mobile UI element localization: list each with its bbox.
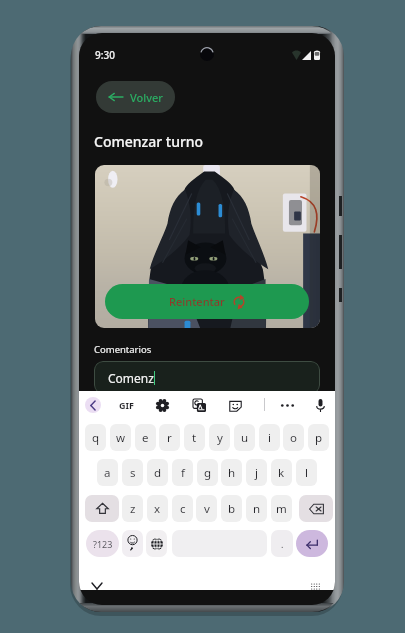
button[interactable]: p xyxy=(308,424,329,451)
staticText: Volver xyxy=(130,90,163,105)
button[interactable]: n xyxy=(246,495,267,522)
button[interactable]: q xyxy=(85,424,106,451)
staticText: 9:30 xyxy=(95,48,115,62)
button[interactable]: Hide keyboard xyxy=(88,577,106,595)
button[interactable]: r xyxy=(159,424,180,451)
button[interactable]: t xyxy=(184,424,205,451)
button[interactable]: u xyxy=(234,424,255,451)
button[interactable]: Back xyxy=(85,397,101,413)
button[interactable]: l xyxy=(296,459,317,486)
button[interactable]: o xyxy=(283,424,304,451)
staticText: s xyxy=(130,465,136,481)
staticText: x xyxy=(154,501,161,517)
staticText: r xyxy=(167,430,172,446)
button[interactable]: x xyxy=(147,495,168,522)
button[interactable]: h xyxy=(221,459,242,486)
staticText: d xyxy=(154,465,162,481)
staticText: f xyxy=(181,465,185,481)
button[interactable]: k xyxy=(271,459,292,486)
button[interactable]: s xyxy=(122,459,143,486)
staticText: k xyxy=(278,465,285,481)
button[interactable]: v xyxy=(196,495,217,522)
staticText: c xyxy=(180,501,186,517)
button[interactable]: Change language xyxy=(146,530,167,557)
button[interactable]: z xyxy=(122,495,143,522)
button[interactable]: g xyxy=(197,459,218,486)
staticText: q xyxy=(92,430,100,446)
staticText: w xyxy=(116,430,126,446)
button[interactable]: j xyxy=(246,459,267,486)
button[interactable]: w xyxy=(110,424,131,451)
button[interactable]: m xyxy=(271,495,292,522)
staticText: ?123 xyxy=(93,538,113,550)
button[interactable]: e xyxy=(135,424,156,451)
button[interactable]: Enter xyxy=(296,530,328,557)
staticText: y xyxy=(217,430,223,446)
button[interactable]: c xyxy=(172,495,193,522)
button[interactable]: d xyxy=(147,459,168,486)
staticText: b xyxy=(228,501,236,517)
staticText: l xyxy=(305,465,308,481)
staticText: GIF xyxy=(119,399,134,411)
staticText: h xyxy=(228,465,236,481)
button[interactable]: More options xyxy=(277,395,297,415)
button[interactable]: . xyxy=(271,530,293,557)
staticText: i xyxy=(268,430,271,446)
button[interactable]: Reintentar xyxy=(105,284,309,319)
button[interactable]: Volver xyxy=(96,81,175,113)
button[interactable]: b xyxy=(221,495,242,522)
button[interactable]: GIF xyxy=(114,395,138,415)
button[interactable]: Stickers xyxy=(225,395,245,415)
staticText: p xyxy=(315,430,323,446)
staticText: a xyxy=(104,465,111,481)
staticText: m xyxy=(276,501,287,517)
button[interactable]: Translate xyxy=(189,395,209,415)
button[interactable]: Comenz xyxy=(94,361,320,394)
staticText: . xyxy=(281,538,284,550)
staticText: g xyxy=(204,465,212,481)
staticText: v xyxy=(204,501,210,517)
button[interactable]: Settings xyxy=(152,395,172,415)
button[interactable]: f xyxy=(172,459,193,486)
staticText: u xyxy=(241,430,249,446)
button[interactable]: Backspace xyxy=(299,495,333,522)
button[interactable]: i xyxy=(259,424,280,451)
staticText: e xyxy=(142,430,149,446)
staticText: Comenz xyxy=(108,370,154,386)
staticText: n xyxy=(253,501,261,517)
staticText: t xyxy=(192,430,197,446)
button[interactable]: Emoji xyxy=(122,530,143,557)
button[interactable]: a xyxy=(97,459,118,486)
staticText: Comenzar turno xyxy=(94,132,204,151)
button[interactable]: Voice input xyxy=(310,395,330,415)
staticText: j xyxy=(255,465,258,481)
staticText: o xyxy=(290,430,297,446)
button[interactable]: Keyboard modes xyxy=(306,577,324,595)
staticText: Comentarios xyxy=(94,343,152,356)
button[interactable]: y xyxy=(209,424,230,451)
staticText: Reintentar xyxy=(169,294,225,309)
button[interactable]: ?123 xyxy=(86,530,119,557)
button[interactable]: Shift xyxy=(85,495,119,522)
staticText: z xyxy=(130,501,136,517)
